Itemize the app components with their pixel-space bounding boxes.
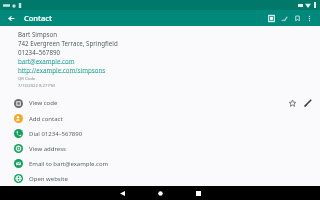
staticText: 01234–567890	[18, 48, 61, 56]
staticText: bart@example.com	[18, 57, 75, 65]
button[interactable]: Copy	[265, 12, 278, 25]
staticText: Add contact	[29, 115, 63, 123]
staticText: QR Code	[18, 76, 36, 82]
staticText: Bart Simpson	[18, 30, 58, 38]
button[interactable]: Back	[111, 186, 133, 200]
button[interactable]: Share	[278, 12, 291, 25]
staticText: Dial 01234–567890	[29, 130, 83, 138]
staticText: Contact	[24, 13, 52, 23]
staticText: Email to bart@example.com	[29, 160, 109, 168]
button[interactable]: Add contact	[0, 111, 320, 126]
button[interactable]: Open website	[0, 171, 320, 186]
button[interactable]: View address	[0, 141, 320, 156]
staticText: 742 Evergreen Terrace, Springfield	[18, 39, 118, 47]
staticText: http://example.com/simpsons	[18, 66, 106, 74]
staticText: 7/13/2022 8:27 PM	[18, 83, 55, 89]
button[interactable]: Recent apps	[187, 186, 209, 200]
staticText: View address	[29, 145, 66, 153]
button[interactable]: View code	[0, 95, 284, 111]
button[interactable]: Dial 01234–567890	[0, 126, 320, 141]
button[interactable]: Email to bart@example.com	[0, 156, 320, 171]
button[interactable]: Home	[149, 186, 171, 200]
staticText: Open website	[29, 175, 68, 183]
button[interactable]: More options	[304, 13, 315, 24]
button[interactable]: Bookmark	[291, 12, 304, 25]
button[interactable]: Back	[5, 12, 17, 24]
staticText: View code	[29, 99, 58, 107]
button[interactable]: Edit	[300, 95, 316, 111]
button[interactable]: Favorite	[284, 95, 300, 111]
